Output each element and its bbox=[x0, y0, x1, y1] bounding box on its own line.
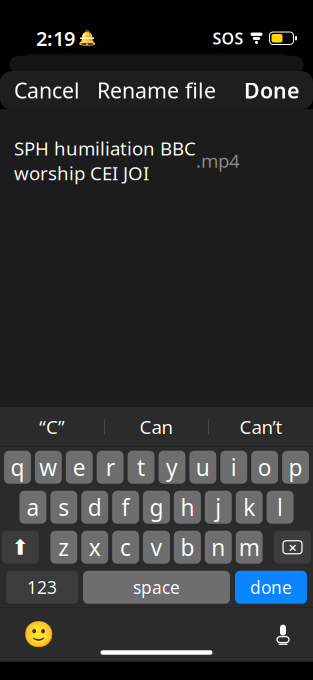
button[interactable]: g bbox=[143, 491, 170, 524]
button[interactable]: b bbox=[174, 531, 201, 564]
staticText: u bbox=[196, 452, 210, 482]
button[interactable]: m bbox=[236, 531, 263, 564]
button[interactable]: h bbox=[174, 491, 201, 524]
staticText: w bbox=[39, 452, 57, 482]
staticText: c bbox=[120, 532, 131, 562]
staticText: 🔔 bbox=[78, 30, 96, 47]
staticText: l bbox=[277, 492, 283, 522]
button[interactable]: z bbox=[50, 531, 77, 564]
button[interactable]: Done bbox=[230, 67, 313, 113]
button[interactable]: k bbox=[236, 491, 263, 524]
button[interactable]: e bbox=[66, 451, 93, 484]
staticText: d bbox=[88, 492, 102, 522]
button[interactable]: Delete bbox=[274, 531, 311, 564]
staticText: t bbox=[137, 452, 145, 482]
staticText: SOS bbox=[212, 28, 243, 49]
button[interactable]: Cancel bbox=[0, 67, 94, 113]
staticText: m bbox=[239, 532, 260, 562]
staticText: × bbox=[288, 537, 296, 557]
staticText: j bbox=[215, 492, 221, 522]
staticText: h bbox=[180, 492, 194, 522]
button[interactable]: j bbox=[205, 491, 232, 524]
button[interactable]: u bbox=[189, 451, 216, 484]
staticText: e bbox=[73, 452, 86, 482]
button[interactable]: x bbox=[81, 531, 108, 564]
button[interactable]: y bbox=[158, 451, 185, 484]
staticText: “C” bbox=[39, 414, 65, 439]
staticText: v bbox=[150, 532, 162, 562]
button[interactable]: d bbox=[81, 491, 108, 524]
button[interactable]: f bbox=[112, 491, 139, 524]
button[interactable]: l bbox=[267, 491, 293, 524]
staticText: Can bbox=[139, 414, 173, 439]
staticText: y bbox=[166, 452, 178, 482]
staticText: 2:19 bbox=[36, 25, 75, 52]
staticText: x bbox=[89, 532, 101, 562]
button[interactable]: space bbox=[83, 571, 230, 604]
button[interactable]: done bbox=[235, 571, 307, 604]
staticText: ⬆ bbox=[11, 535, 29, 559]
button[interactable]: w bbox=[35, 451, 62, 484]
staticText: b bbox=[180, 532, 194, 562]
staticText: Done bbox=[244, 76, 299, 104]
staticText: o bbox=[258, 452, 272, 482]
staticText: 🙂 bbox=[23, 620, 55, 649]
staticText: 123 bbox=[27, 576, 57, 599]
button[interactable]: c bbox=[112, 531, 139, 564]
staticText: k bbox=[243, 492, 255, 522]
staticText: n bbox=[211, 532, 225, 562]
staticText: q bbox=[10, 452, 24, 482]
button[interactable]: SPH humiliation BBC worship CEI JOI bbox=[0, 110, 313, 195]
button[interactable]: Can bbox=[105, 407, 208, 447]
staticText: space bbox=[133, 576, 180, 599]
button[interactable]: Shift bbox=[2, 531, 39, 564]
staticText: SPH humiliation BBC worship CEI JOI bbox=[14, 136, 196, 185]
staticText: f bbox=[122, 492, 130, 522]
staticText: done bbox=[250, 576, 292, 599]
staticText: z bbox=[58, 532, 69, 562]
button[interactable]: p bbox=[282, 451, 309, 484]
staticText: .mp4 bbox=[196, 148, 240, 173]
staticText: Cancel bbox=[14, 76, 80, 104]
staticText: a bbox=[26, 492, 39, 522]
button[interactable]: Emoji bbox=[13, 610, 65, 659]
button[interactable]: r bbox=[97, 451, 124, 484]
button[interactable]: n bbox=[205, 531, 232, 564]
button[interactable]: v bbox=[143, 531, 170, 564]
staticText: i bbox=[231, 452, 237, 482]
staticText: Can’t bbox=[239, 414, 282, 439]
button[interactable]: q bbox=[4, 451, 31, 484]
button[interactable]: i bbox=[220, 451, 247, 484]
staticText: Rename file bbox=[97, 76, 216, 104]
button[interactable]: Dictation bbox=[266, 614, 300, 655]
button[interactable]: o bbox=[251, 451, 278, 484]
button[interactable]: a bbox=[19, 491, 46, 524]
button[interactable]: s bbox=[50, 491, 77, 524]
button[interactable]: t bbox=[128, 451, 154, 484]
staticText: g bbox=[149, 492, 163, 522]
staticText: s bbox=[58, 492, 69, 522]
button[interactable]: 123 bbox=[6, 571, 78, 604]
staticText: r bbox=[106, 452, 115, 482]
button[interactable]: “C” bbox=[0, 407, 104, 447]
button[interactable]: Can’t bbox=[209, 407, 313, 447]
staticText: p bbox=[289, 452, 303, 482]
